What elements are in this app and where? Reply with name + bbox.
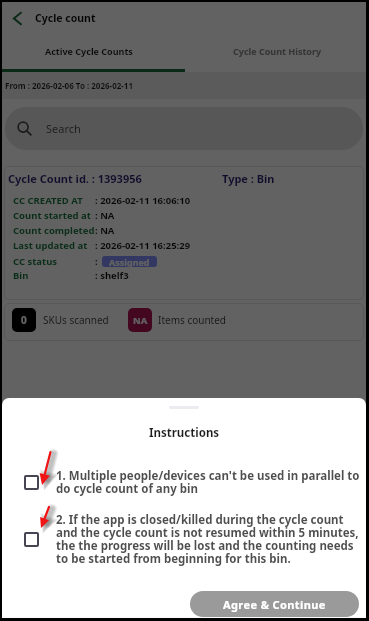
staticText: 1. Multiple people/devices can't be used…	[56, 468, 362, 497]
button[interactable]: Checkbox	[24, 475, 39, 490]
button[interactable]: Active Cycle Counts	[2, 33, 184, 72]
staticText: : NA	[95, 224, 115, 237]
staticText: : 2026-02-11 16:06:10	[95, 194, 191, 207]
button[interactable]: Agree & Continue	[190, 591, 359, 617]
staticText: Instructions	[149, 425, 220, 441]
staticText: Count completed at	[13, 224, 95, 239]
staticText: Count started at	[13, 209, 91, 222]
staticText: Type : Bin	[222, 171, 275, 186]
staticText: Agree & Continue	[223, 597, 326, 612]
staticText: Cycle count	[35, 11, 96, 25]
staticText: CC CREATED AT	[13, 194, 83, 207]
staticText: Items counted	[158, 313, 226, 327]
staticText: Cycle Count id. : 1393956	[8, 171, 142, 186]
button[interactable]: Search	[5, 107, 363, 150]
staticText: Search	[46, 121, 81, 136]
staticText: Last updated at	[13, 239, 88, 252]
button[interactable]: Back	[2, 3, 32, 33]
staticText: SKUs scanned	[43, 313, 109, 327]
staticText: : NA	[95, 209, 115, 222]
staticText: Assigned	[109, 256, 150, 267]
staticText: 2. If the app is closed/killed during th…	[56, 512, 362, 567]
staticText: NA	[133, 314, 148, 327]
staticText: Bin	[13, 269, 29, 282]
staticText: Start Cycle Count	[141, 587, 228, 601]
staticText: :	[95, 255, 98, 268]
button[interactable]: Start Cycle Count	[5, 577, 363, 611]
staticText: CC status	[13, 255, 58, 268]
staticText: From : 2026-02-06 To : 2026-02-11	[5, 80, 134, 91]
button[interactable]: Checkbox	[24, 532, 39, 547]
staticText: : shelf3	[95, 269, 129, 282]
staticText: : 2026-02-11 16:25:29	[95, 239, 191, 252]
staticText: Cycle Count History	[233, 45, 322, 57]
button[interactable]: Cycle Count History	[184, 33, 366, 72]
staticText: 0	[21, 313, 27, 327]
staticText: Active Cycle Counts	[45, 45, 133, 57]
